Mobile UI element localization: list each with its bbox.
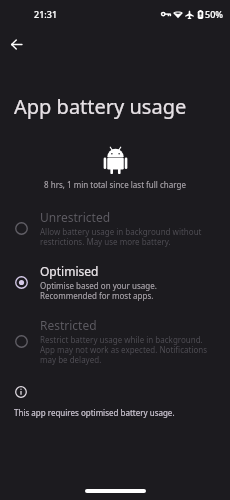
staticText: 50% [205, 8, 223, 20]
staticText: Unrestricted [40, 209, 111, 225]
button[interactable]: Unrestricted [0, 201, 230, 255]
staticText: This app requires optimised battery usag… [14, 407, 175, 418]
staticText: 8 hrs, 1 min total since last full charg… [0, 179, 230, 190]
staticText: Allow battery usage in background withou… [40, 226, 212, 247]
button[interactable]: Optimised [0, 255, 230, 309]
button[interactable]: Back [5, 33, 28, 56]
staticText: Restricted [40, 317, 97, 333]
staticText: Optimise based on your usage. Recommende… [40, 280, 212, 301]
staticText: Optimised [40, 263, 99, 279]
staticText: App battery usage [14, 93, 187, 120]
button[interactable]: Restricted [0, 309, 230, 373]
staticText: 21:31 [34, 8, 58, 20]
staticText: Restrict battery usage while in backgrou… [40, 334, 212, 365]
